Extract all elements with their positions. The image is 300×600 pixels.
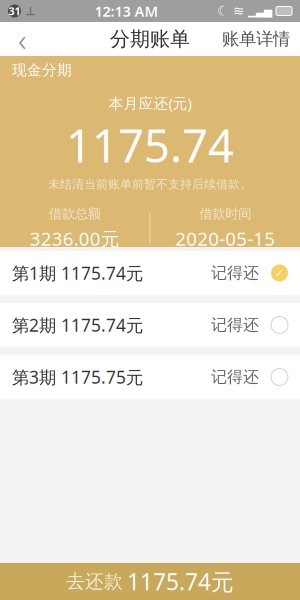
staticText: 去还款 <box>66 570 123 593</box>
staticText: 未结清当前账单前暂不支持后续借款。 <box>48 177 252 192</box>
button[interactable]: 去还款 <box>0 563 300 600</box>
staticText: 3236.00元 <box>30 226 120 251</box>
staticText: 12:13 AM <box>94 1 158 21</box>
button[interactable]: 返回 <box>0 22 44 56</box>
staticText: ▁▃▅ <box>248 5 272 17</box>
button[interactable]: 第3期 1175.75元 <box>0 355 300 399</box>
button[interactable]: 第1期 1175.74元 <box>0 251 300 295</box>
staticText: 2020-05-15 <box>175 226 275 251</box>
staticText: 记得还 <box>211 367 259 387</box>
staticText: 本月应还(元) <box>108 93 191 113</box>
staticText: 31 <box>8 4 20 18</box>
staticText: 第3期 1175.75元 <box>12 365 143 388</box>
staticText: 记得还 <box>211 263 259 283</box>
staticText: 分期账单 <box>110 27 190 51</box>
staticText: 借款总额 <box>49 206 101 222</box>
staticText: ⊥ <box>25 4 36 18</box>
button[interactable]: 第2期 1175.74元 <box>0 303 300 347</box>
staticText: 现金分期 <box>12 61 72 79</box>
staticText: 账单详情 <box>222 28 290 50</box>
staticText: ≋ <box>233 3 244 18</box>
staticText: 第2期 1175.74元 <box>12 313 143 336</box>
staticText: 1175.74 <box>66 115 234 175</box>
staticText: ‹ <box>18 18 26 60</box>
staticText: ✓ <box>274 266 284 280</box>
staticText: 1175.74元 <box>127 566 234 596</box>
staticText: 第1期 1175.74元 <box>12 261 143 284</box>
staticText: 借款时间 <box>199 206 251 222</box>
button[interactable]: 账单详情 <box>212 22 300 56</box>
staticText: 记得还 <box>211 315 259 335</box>
staticText: ☾ <box>217 3 229 18</box>
